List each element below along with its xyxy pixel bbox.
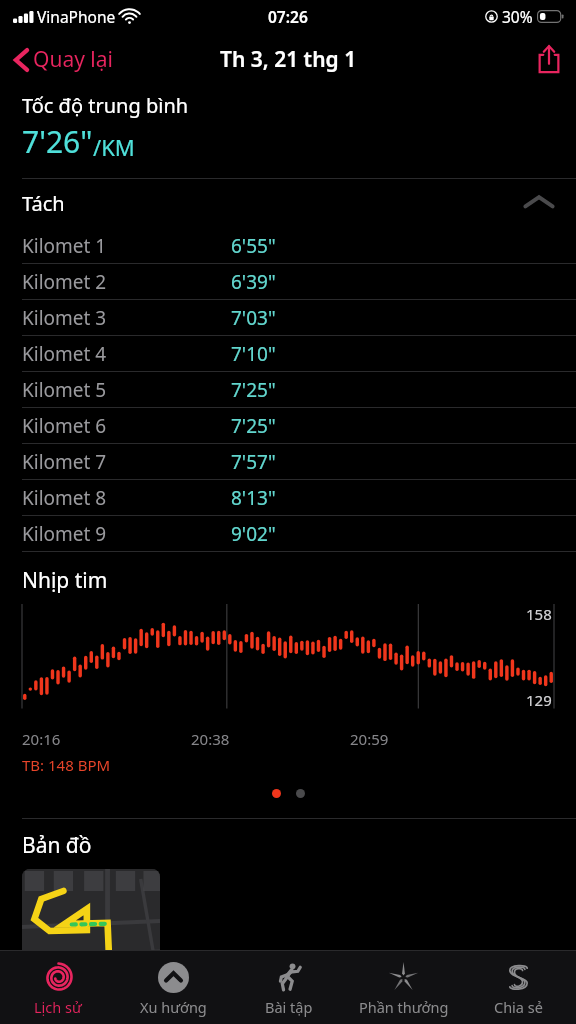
button[interactable]: Xu hướng — [116, 951, 231, 1024]
staticText: 7'03" — [231, 305, 276, 331]
staticText: Kilomet 4 — [22, 341, 107, 367]
staticText: 30% — [502, 6, 533, 27]
staticText: Xu hướng — [140, 997, 207, 1017]
staticText: 158 — [526, 604, 552, 624]
button[interactable]: Bản đồ — [22, 869, 160, 969]
button[interactable]: Kilomet 1 — [0, 228, 576, 263]
staticText: 7'57" — [231, 449, 276, 475]
staticText: Kilomet 2 — [22, 269, 107, 295]
staticText: 20:59 — [350, 729, 389, 749]
staticText: Bài tập — [265, 997, 313, 1017]
button[interactable]: Bài tập — [231, 951, 346, 1024]
staticText: 9'02" — [231, 521, 276, 547]
button[interactable]: Tách — [0, 179, 576, 228]
staticText: 129 — [526, 690, 552, 710]
button[interactable]: Kilomet 5 — [0, 372, 576, 407]
button[interactable]: Kilomet 8 — [0, 480, 576, 515]
staticText: 7'25" — [231, 377, 276, 403]
staticText: Th 3, 21 thg 1 — [220, 45, 357, 74]
button[interactable]: Chia sẻ — [461, 951, 576, 1024]
staticText: 7'10" — [231, 341, 276, 367]
button[interactable]: Quay lại — [0, 39, 123, 80]
staticText: 7'26" — [22, 121, 93, 162]
button[interactable]: Kilomet 6 — [0, 408, 576, 443]
button[interactable]: Kilomet 4 — [0, 336, 576, 371]
staticText: Tốc độ trung bình — [22, 92, 189, 119]
button[interactable]: Kilomet 3 — [0, 300, 576, 335]
staticText: Kilomet 1 — [22, 233, 107, 259]
staticText: Quay lại — [33, 45, 113, 74]
button[interactable]: Lịch sử — [0, 951, 116, 1024]
staticText: 7'25" — [231, 413, 276, 439]
staticText: Kilomet 9 — [22, 521, 107, 547]
staticText: Lịch sử — [34, 997, 82, 1017]
staticText: 8'13" — [231, 485, 276, 511]
staticText: Kilomet 3 — [22, 305, 107, 331]
button[interactable]: Chia sẻ — [536, 44, 576, 74]
button[interactable]: Kilomet 7 — [0, 444, 576, 479]
button[interactable]: Kilomet 2 — [0, 264, 576, 299]
button[interactable]: Kilomet 9 — [0, 516, 576, 551]
button[interactable]: Phần thưởng — [346, 951, 461, 1024]
staticText: Kilomet 5 — [22, 377, 107, 403]
staticText: Kilomet 8 — [22, 485, 107, 511]
staticText: Chia sẻ — [494, 997, 543, 1017]
staticText: Kilomet 7 — [22, 449, 107, 475]
staticText: VinaPhone — [37, 6, 116, 27]
staticText: Kilomet 6 — [22, 413, 107, 439]
staticText: Nhịp tim — [22, 566, 108, 595]
staticText: 20:16 — [22, 729, 61, 749]
staticText: Tách — [22, 190, 65, 217]
staticText: /KM — [93, 132, 135, 162]
staticText: 07:26 — [268, 6, 308, 27]
staticText: 6'39" — [231, 269, 276, 295]
staticText: Phần thưởng — [359, 997, 449, 1017]
staticText: 20:38 — [191, 729, 230, 749]
staticText: TB: 148 BPM — [22, 755, 111, 775]
staticText: Bản đồ — [22, 831, 92, 860]
staticText: 6'55" — [231, 233, 276, 259]
